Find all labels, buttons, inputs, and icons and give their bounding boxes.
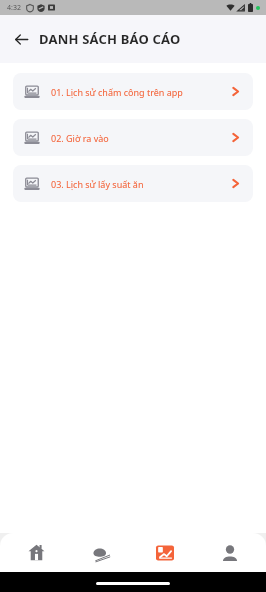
button[interactable]: Back xyxy=(6,24,36,54)
staticText: 4:32 xyxy=(7,3,21,13)
button[interactable]: Home xyxy=(8,533,64,572)
button[interactable]: 03. Lịch sử lấy suất ăn xyxy=(13,165,253,202)
staticText: 03. Lịch sử lấy suất ăn xyxy=(51,178,229,190)
button[interactable]: 01. Lịch sử chấm công trên app xyxy=(13,73,253,110)
staticText: 02. Giờ ra vào xyxy=(51,132,229,144)
button[interactable]: Meals xyxy=(73,533,129,572)
button[interactable]: Profile xyxy=(202,533,258,572)
button[interactable]: 02. Giờ ra vào xyxy=(13,119,253,156)
staticText: 01. Lịch sử chấm công trên app xyxy=(51,86,229,98)
button[interactable]: Reports xyxy=(137,533,193,572)
staticText: DANH SÁCH BÁO CÁO xyxy=(39,30,181,48)
